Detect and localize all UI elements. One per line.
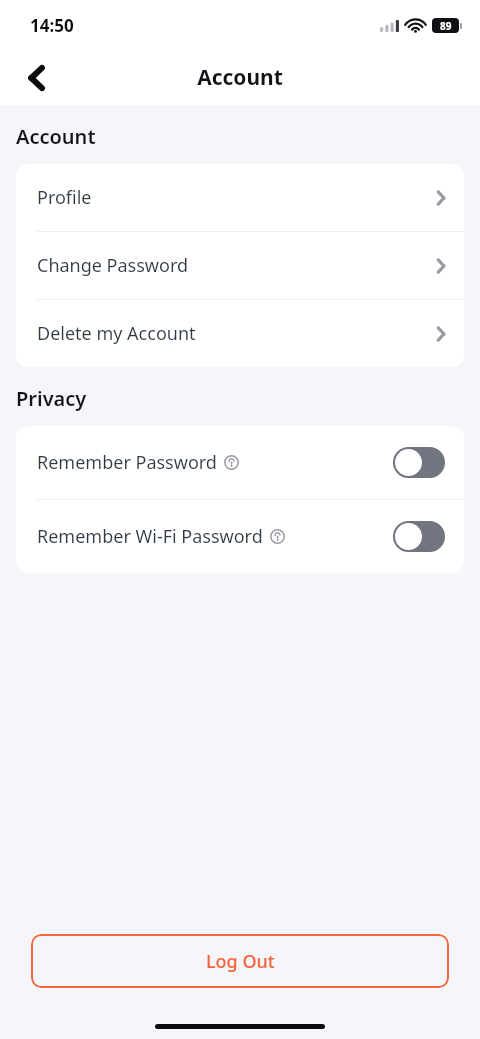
staticText: 89 bbox=[440, 19, 452, 33]
staticText: Account bbox=[16, 123, 96, 150]
staticText: Account bbox=[197, 63, 283, 92]
staticText: Privacy bbox=[16, 385, 87, 412]
staticText: 14:50 bbox=[30, 14, 74, 37]
staticText: Profile bbox=[37, 185, 92, 210]
staticText: Remember Password bbox=[37, 450, 217, 475]
button[interactable]: Back bbox=[14, 56, 58, 100]
staticText: Remember Wi-Fi Password bbox=[37, 524, 263, 549]
staticText: Log Out bbox=[206, 949, 275, 974]
button[interactable]: Remember Wi-Fi Password bbox=[16, 500, 464, 573]
button[interactable]: Profile bbox=[16, 164, 464, 232]
button[interactable]: Change Password bbox=[16, 232, 464, 300]
staticText: Delete my Account bbox=[37, 321, 196, 346]
button[interactable]: Remember Password bbox=[16, 426, 464, 500]
button[interactable]: Log Out bbox=[31, 934, 449, 988]
button[interactable]: Toggle bbox=[393, 447, 445, 478]
button[interactable]: Toggle bbox=[393, 521, 445, 552]
button[interactable]: Delete my Account bbox=[16, 300, 464, 367]
staticText: Change Password bbox=[37, 253, 189, 278]
